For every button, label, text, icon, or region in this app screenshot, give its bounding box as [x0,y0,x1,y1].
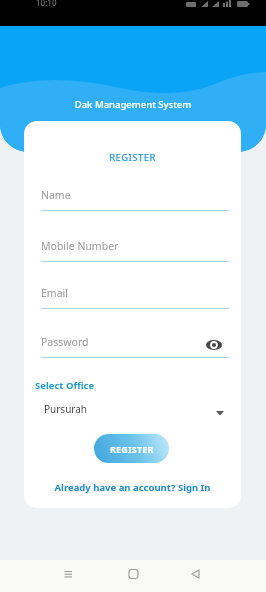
staticText: REGISTER [24,151,241,164]
button[interactable]: Mobile Number [41,239,119,253]
staticText: Pursurah [44,402,88,416]
button[interactable] [205,339,223,351]
button[interactable]: Name [41,188,71,202]
staticText: Select Office [35,379,95,392]
staticText: 10:10 [36,0,57,8]
button[interactable]: REGISTER [94,434,169,463]
button[interactable]: Already have an account? Sign In [24,481,241,494]
button[interactable]: Pursurah [38,399,230,421]
button[interactable]: Password [41,335,89,349]
button[interactable]: Email [41,286,68,300]
staticText: Dak Management System [0,98,266,111]
staticText: REGISTER [110,443,154,455]
